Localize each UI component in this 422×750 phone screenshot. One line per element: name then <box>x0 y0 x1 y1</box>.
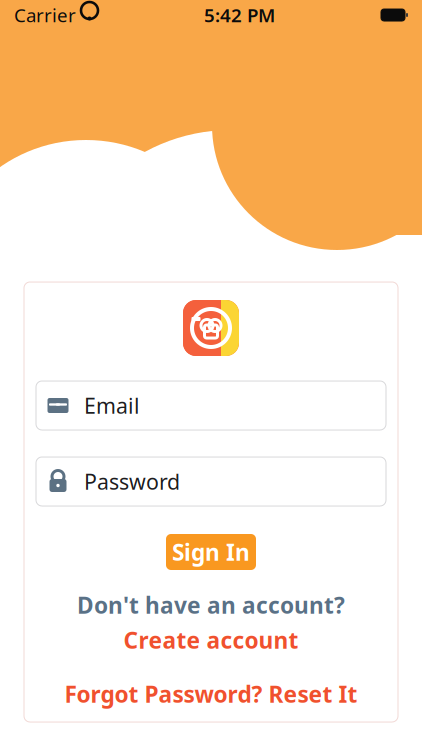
staticText: Sign In <box>172 537 250 567</box>
button[interactable]: Don't have an account? <box>61 593 361 617</box>
button[interactable]: Create account <box>61 628 361 652</box>
staticText: Email <box>84 391 140 420</box>
button[interactable]: Password <box>36 457 386 506</box>
staticText: Don't have an account? <box>77 590 345 620</box>
button[interactable]: Email <box>36 381 386 430</box>
staticText: Carrier <box>14 3 76 27</box>
staticText: 5:42 PM <box>204 3 275 27</box>
staticText: Password <box>84 467 180 496</box>
staticText: Create account <box>123 625 298 655</box>
button[interactable]: Sign In <box>166 534 256 570</box>
staticText: Forgot Password? Reset It <box>64 679 357 709</box>
button[interactable]: Forgot Password? Reset It <box>46 682 376 706</box>
